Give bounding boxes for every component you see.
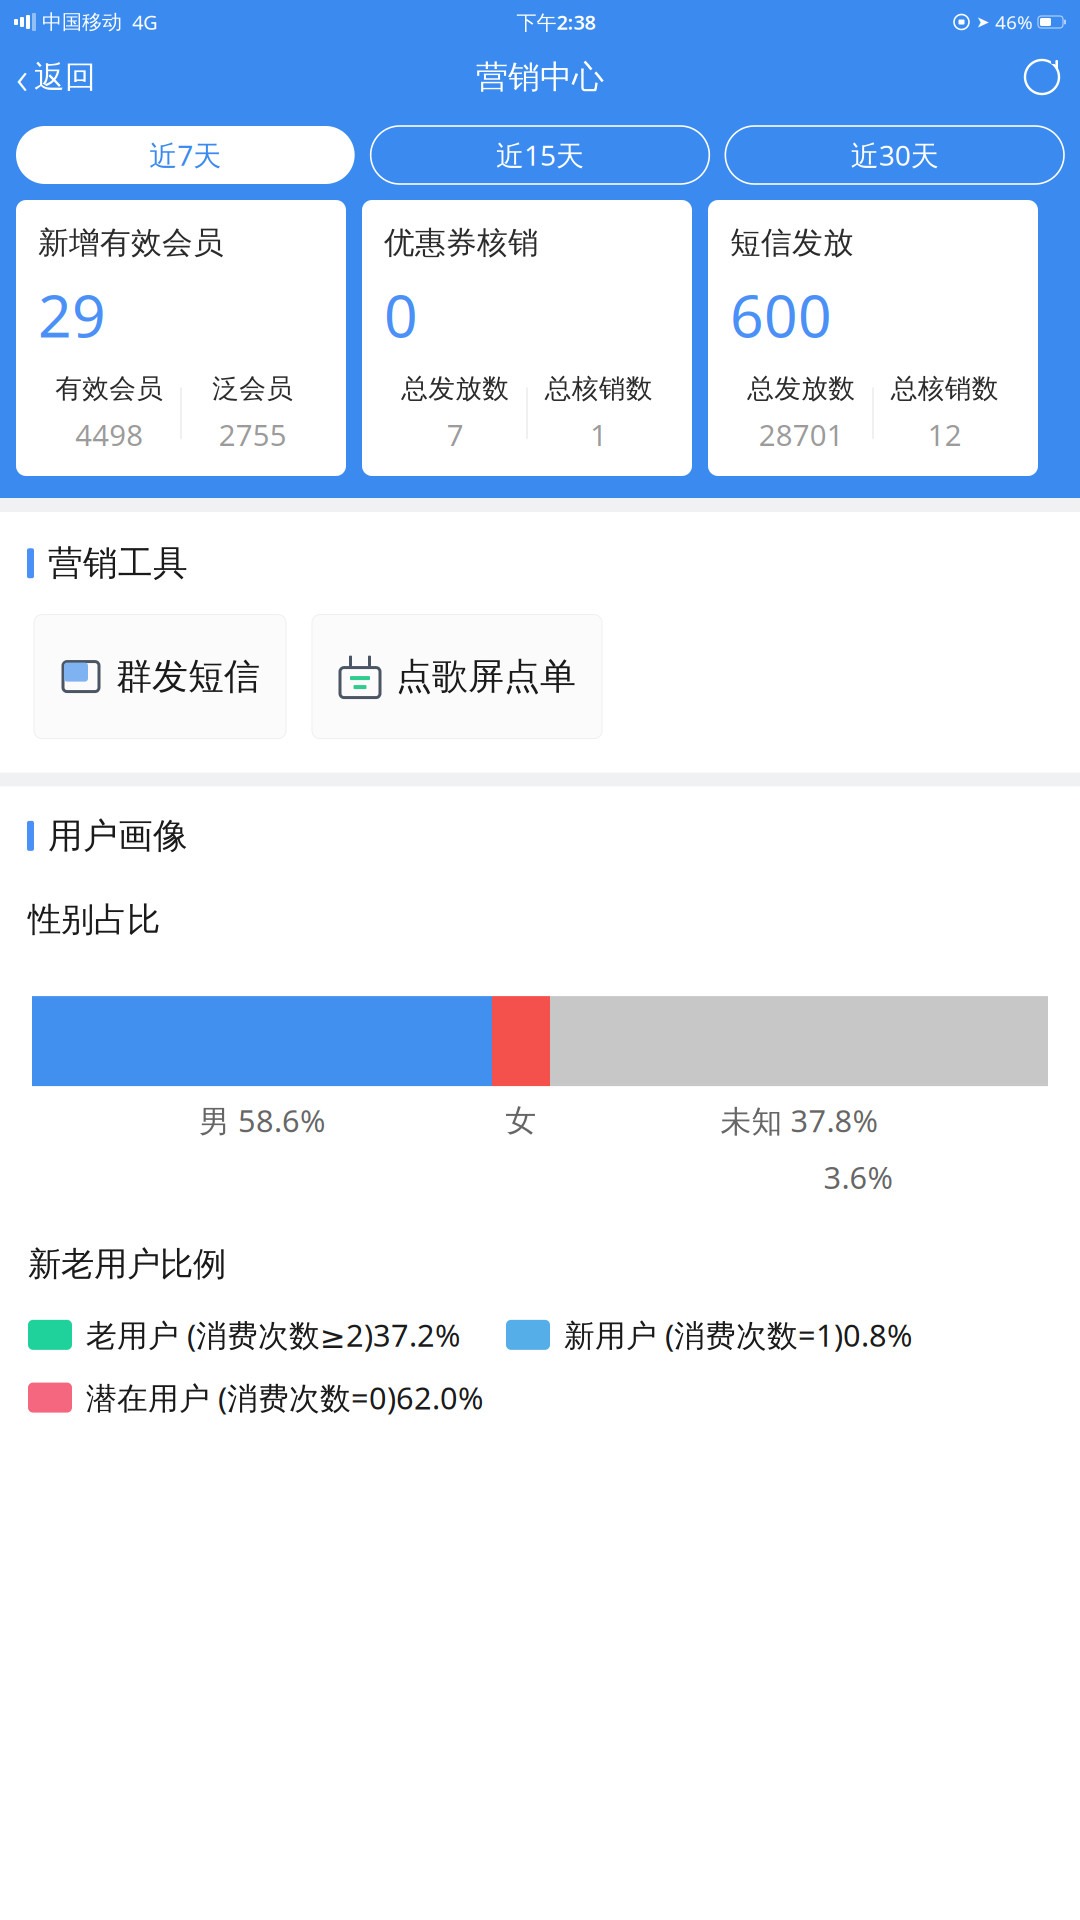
staticText: 用户画像 [48,815,188,857]
button[interactable]: 近30天 [725,126,1064,184]
staticText: 7 [447,415,464,454]
staticText: 返回 [34,58,96,96]
staticText: 优惠券核销 [384,224,539,262]
staticText: 群发短信 [116,654,260,699]
staticText: 点歌屏点单 [396,654,576,699]
staticText: 新老用户比例 [28,1244,226,1284]
staticText: 600 [730,276,832,354]
staticText: 28701 [759,415,844,454]
staticText: 3.6% [823,1157,892,1197]
staticText: 总发放数 [401,372,509,405]
staticText: 总核销数 [891,372,999,405]
staticText: 性别占比 [28,899,160,940]
staticText: 老用户 (消费次数≥2)37.2% [86,1314,460,1355]
staticText: 4G [132,9,158,35]
staticText: 总核销数 [545,372,653,405]
button[interactable]: 点歌屏点单 [312,615,602,739]
staticText: 近15天 [496,136,584,174]
staticText: 短信发放 [730,224,854,262]
staticText: 泛会员 [212,372,293,405]
button[interactable]: 新增有效会员 [16,200,346,476]
staticText: 营销中心 [476,57,604,97]
staticText: 1 [590,415,607,454]
button[interactable]: 群发短信 [34,615,286,739]
staticText: 12 [928,415,962,454]
staticText: 女 [505,1102,536,1139]
staticText: ‹ [16,47,28,107]
button[interactable]: 近15天 [371,126,709,184]
staticText: 总发放数 [747,372,855,405]
button[interactable]: 短信发放 [708,200,1038,476]
button[interactable]: ‹ [0,47,112,107]
button[interactable]: 优惠券核销 [362,200,692,476]
staticText: 4498 [75,415,143,454]
staticText: 46% [995,10,1033,34]
staticText: 近30天 [851,136,939,174]
staticText: 男 58.6% [199,1100,325,1141]
staticText: 近7天 [149,136,221,174]
staticText: 有效会员 [55,372,163,405]
staticText: 新增有效会员 [38,224,224,262]
staticText: 新用户 (消费次数=1)0.8% [564,1314,912,1355]
button[interactable]: 刷新 [1004,47,1080,107]
staticText: ➤ [976,13,989,31]
staticText: 0 [384,276,418,354]
staticText: 潜在用户 (消费次数=0)62.0% [86,1377,483,1418]
staticText: 2755 [219,415,287,454]
staticText: 未知 37.8% [720,1100,877,1141]
staticText: 营销工具 [48,542,188,585]
staticText: 中国移动 [42,10,122,34]
staticText: 下午2:38 [516,9,595,35]
staticText: 29 [38,276,106,354]
button[interactable]: 近7天 [16,126,355,184]
